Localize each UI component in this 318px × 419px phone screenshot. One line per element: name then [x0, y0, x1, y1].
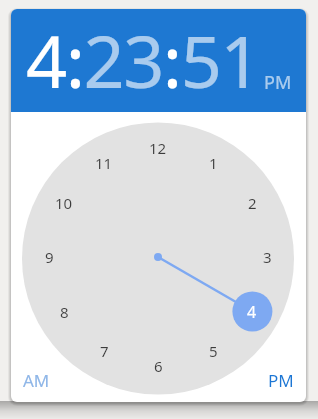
button[interactable]: 1 — [198, 148, 228, 178]
staticText: 7 — [100, 341, 109, 361]
staticText: 6 — [154, 356, 163, 376]
button[interactable]: 7 — [89, 336, 119, 366]
button[interactable]: 4:23:51 — [26, 11, 261, 109]
staticText: 2 — [248, 193, 257, 213]
staticText: 5 — [209, 341, 218, 361]
staticText: 10 — [55, 193, 73, 213]
button[interactable]: AM — [14, 366, 58, 394]
staticText: 3 — [263, 247, 272, 267]
button[interactable]: 3 — [252, 242, 282, 272]
staticText: PM — [268, 369, 294, 392]
button[interactable]: 10 — [49, 188, 79, 218]
button[interactable]: 11 — [89, 148, 119, 178]
button[interactable]: 5 — [198, 336, 228, 366]
button[interactable]: 4 — [237, 297, 267, 327]
button[interactable]: 2 — [237, 188, 267, 218]
staticText: 4 — [247, 301, 257, 323]
button[interactable]: 9 — [34, 242, 64, 272]
staticText: 9 — [45, 247, 54, 267]
button[interactable]: 12 — [143, 133, 173, 163]
button[interactable]: 8 — [49, 297, 79, 327]
button[interactable]: PM — [264, 70, 292, 95]
staticText: 1 — [209, 153, 218, 173]
staticText: 12 — [149, 138, 167, 158]
button[interactable]: 6 — [143, 351, 173, 381]
button[interactable]: PM — [259, 366, 303, 394]
staticText: AM — [23, 369, 50, 392]
staticText: 11 — [95, 153, 113, 173]
staticText: 8 — [60, 302, 69, 322]
